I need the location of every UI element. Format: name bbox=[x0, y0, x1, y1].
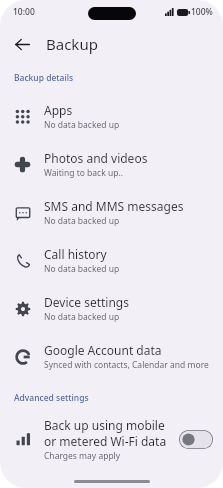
button[interactable]: Call history bbox=[0, 236, 223, 284]
staticText: Advanced settings bbox=[14, 392, 223, 404]
staticText: or metered Wi-Fi data bbox=[44, 433, 167, 449]
button[interactable]: Photos and videos bbox=[0, 140, 223, 188]
button[interactable]: Apps bbox=[0, 92, 223, 140]
staticText: Photos and videos bbox=[44, 150, 148, 166]
staticText: Apps bbox=[44, 102, 73, 118]
staticText: Waiting to back up.. bbox=[44, 167, 123, 179]
staticText: No data backed up bbox=[44, 311, 120, 323]
staticText: 10:00 bbox=[13, 6, 35, 18]
staticText: Call history bbox=[44, 246, 107, 262]
staticText: SMS and MMS messages bbox=[44, 198, 184, 214]
staticText: Backup details bbox=[14, 72, 223, 84]
button[interactable]: Back up using mobile or metered Wi-Fi da… bbox=[179, 430, 213, 449]
staticText: Google Account data bbox=[44, 342, 162, 358]
button[interactable]: Device settings bbox=[0, 284, 223, 332]
staticText: 100% bbox=[191, 6, 213, 18]
staticText: Backup bbox=[46, 34, 98, 54]
staticText: Charges may apply bbox=[44, 450, 121, 462]
staticText: No data backed up bbox=[44, 215, 120, 227]
staticText: Back up using mobile bbox=[44, 417, 165, 433]
button[interactable]: Google Account data bbox=[0, 332, 223, 380]
staticText: No data backed up bbox=[44, 119, 120, 131]
button[interactable]: Back up using mobile bbox=[0, 410, 223, 468]
button[interactable]: SMS and MMS messages bbox=[0, 188, 223, 236]
staticText: Device settings bbox=[44, 294, 129, 310]
staticText: No data backed up bbox=[44, 263, 120, 275]
button[interactable]: Back bbox=[6, 28, 38, 60]
staticText: Synced with contacts, Calendar and more bbox=[44, 359, 209, 371]
